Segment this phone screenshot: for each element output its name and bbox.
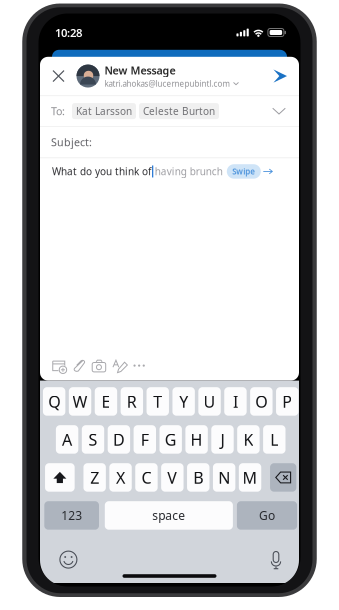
button[interactable]: K [237,425,260,454]
button[interactable]: V [161,463,183,492]
staticText: H [191,429,203,450]
button[interactable]: J [211,425,234,454]
staticText: S [88,429,97,450]
button[interactable]: E [95,387,117,416]
button[interactable]: Expand recipients [268,100,290,122]
staticText: K [243,429,253,450]
staticText: What do you think of [52,165,151,178]
staticText: Swipe [232,166,255,177]
staticText: Y [179,391,188,412]
staticText: A [62,429,72,450]
staticText: T [153,391,162,412]
staticText: B [193,467,203,488]
staticText: V [167,467,177,488]
button[interactable]: A [56,425,78,454]
staticText: Z [90,467,99,488]
button[interactable]: G [159,425,182,454]
staticText: N [218,467,230,488]
button[interactable]: space [105,501,233,530]
staticText: Subject: [51,135,92,149]
staticText: 10:28 [55,25,82,40]
staticText: M [243,467,258,488]
staticText: L [270,429,278,450]
button[interactable]: Format text [112,356,126,376]
staticText: 123 [61,507,82,524]
staticText: D [113,429,125,450]
staticText: J [220,429,224,450]
staticText: I [233,391,238,412]
button[interactable]: Send [267,61,293,91]
button[interactable]: N [213,463,235,492]
staticText: Kat Larsson [76,104,132,118]
button[interactable]: T [146,387,169,416]
staticText: To: [51,104,65,118]
button[interactable]: Y [172,387,195,416]
button[interactable]: Insert [51,356,66,376]
staticText: O [255,391,267,412]
button[interactable]: Shift [45,463,75,492]
button[interactable]: Q [43,387,65,416]
button[interactable]: Go [237,501,297,530]
staticText: F [141,429,149,450]
button[interactable]: C [135,463,158,492]
button[interactable]: O [250,387,273,416]
staticText: Q [48,391,60,412]
staticText: U [203,391,215,412]
button[interactable]: R [121,387,143,416]
staticText: G [165,429,177,450]
staticText: P [282,391,292,412]
button[interactable]: F [134,425,156,454]
button[interactable]: More options [132,356,146,376]
button[interactable]: D [108,425,130,454]
button[interactable]: I [224,387,247,416]
staticText: Go [259,507,275,524]
button[interactable]: H [185,425,208,454]
staticText: W [72,391,87,412]
button[interactable]: Emoji keyboard [55,550,81,569]
button[interactable]: Dictate [263,550,289,569]
button[interactable]: Camera [92,356,106,376]
button[interactable]: 123 [44,501,99,530]
staticText: E [101,391,110,412]
button[interactable]: Delete [270,463,296,492]
button[interactable]: Attach file [72,356,86,376]
staticText: X [116,467,125,488]
button[interactable]: L [263,425,285,454]
button[interactable]: Close [45,61,71,91]
button[interactable]: W [69,387,91,416]
button[interactable]: Z [83,463,106,492]
staticText: having brunch [155,165,223,178]
button[interactable]: X [109,463,132,492]
staticText: C [141,467,151,488]
button[interactable]: U [198,387,221,416]
button[interactable]: S [82,425,104,454]
staticText: Celeste Burton [143,104,215,118]
staticText: New Message [104,63,175,78]
staticText: space [152,507,185,524]
button[interactable]: B [187,463,209,492]
button[interactable]: M [239,463,261,492]
staticText: R [127,391,137,412]
staticText: katri.ahokas@lucernepubintl.com [104,78,229,89]
button[interactable]: P [276,387,298,416]
